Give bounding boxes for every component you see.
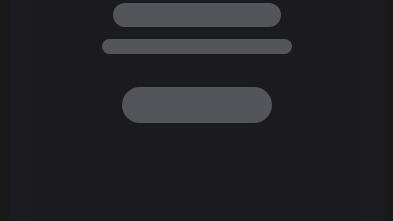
button[interactable]: Subtitle <box>102 39 292 54</box>
button[interactable]: Action button <box>122 87 272 123</box>
button[interactable]: Title <box>113 3 281 27</box>
